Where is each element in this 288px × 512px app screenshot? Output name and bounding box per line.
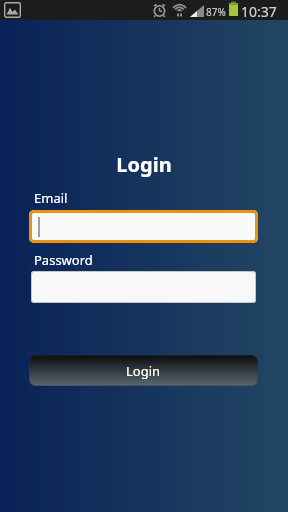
button[interactable] [29, 210, 258, 243]
button[interactable]: Login [29, 355, 258, 386]
staticText: Login [126, 362, 161, 380]
staticText: 87% [206, 5, 226, 19]
staticText: 10:37 [241, 2, 277, 21]
staticText: Email [34, 189, 68, 207]
staticText: Login [0, 151, 288, 178]
button[interactable] [31, 271, 256, 303]
staticText: Password [34, 251, 93, 269]
